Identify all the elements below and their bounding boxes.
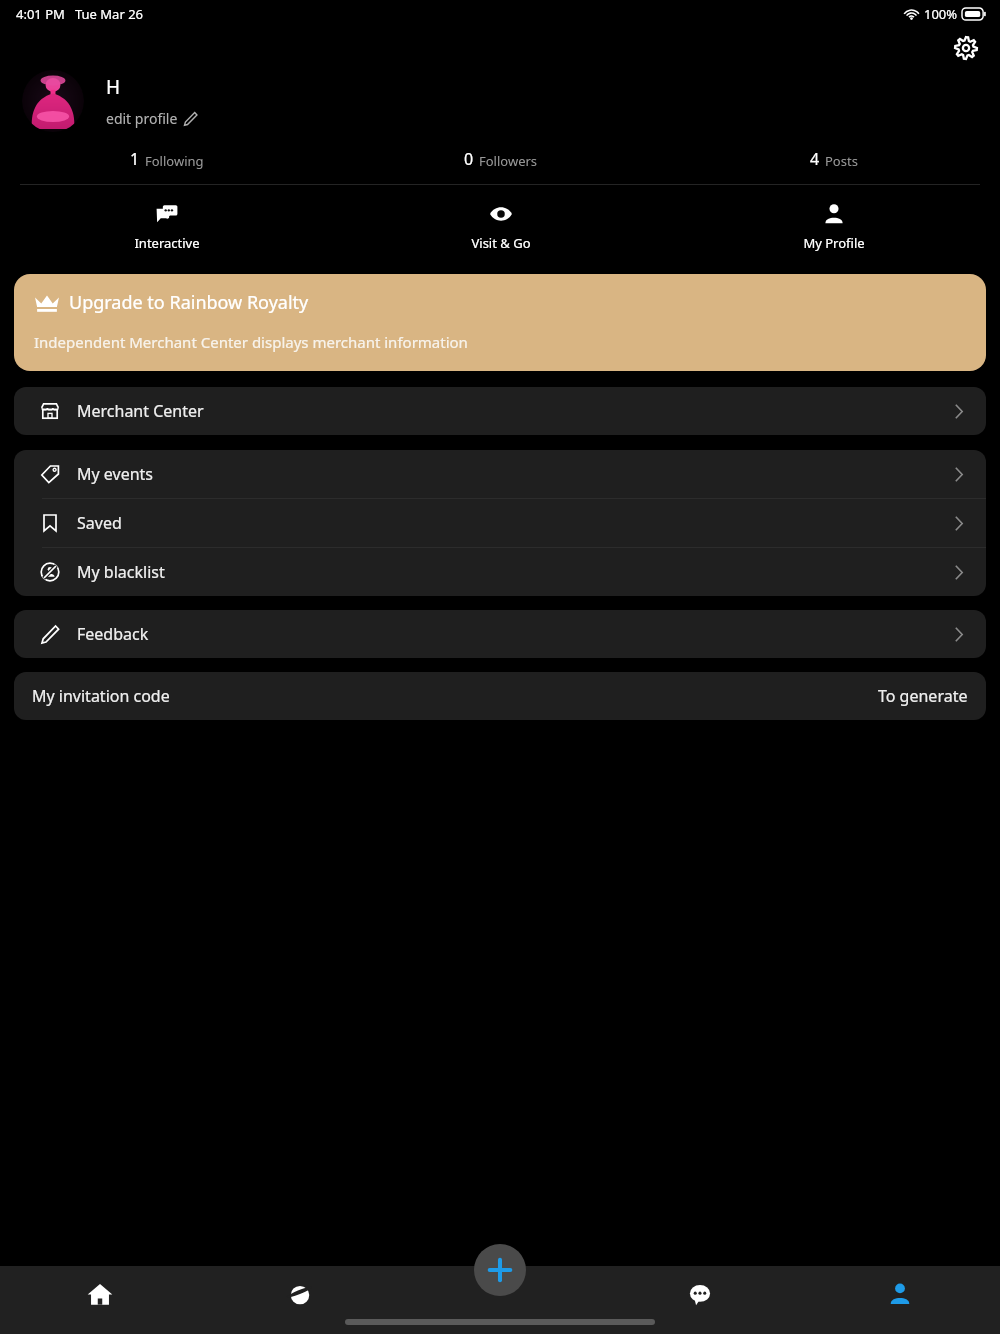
staticText: Following	[145, 152, 204, 170]
staticText: Visit & Go	[471, 234, 531, 252]
button[interactable]: 0	[334, 148, 667, 170]
button[interactable]: Create	[474, 1244, 526, 1296]
staticText: To generate	[878, 685, 968, 707]
button[interactable]: Upgrade to Rainbow Royalty	[14, 274, 986, 371]
staticText: 100%	[924, 5, 958, 23]
staticText: Interactive	[134, 234, 200, 252]
button[interactable]: My Profile	[667, 197, 1000, 256]
button[interactable]: edit profile	[106, 109, 198, 128]
staticText: Feedback	[77, 623, 149, 645]
staticText: 4:01 PM	[16, 5, 65, 23]
staticText: Saved	[77, 512, 122, 534]
staticText: Tue Mar 26	[75, 5, 144, 23]
button[interactable]: Merchant Center	[14, 387, 986, 435]
button[interactable]: Home	[0, 1266, 200, 1322]
staticText: Followers	[479, 152, 538, 170]
button[interactable]: My events	[14, 450, 986, 498]
staticText: My Profile	[803, 234, 865, 252]
staticText: My blacklist	[77, 561, 165, 583]
button[interactable]: My invitation code	[14, 672, 986, 720]
button[interactable]: Settings	[946, 28, 986, 68]
staticText: 1	[130, 148, 140, 170]
button[interactable]: Discover	[200, 1266, 400, 1322]
button[interactable]: Profile	[800, 1266, 1000, 1322]
button[interactable]: My blacklist	[14, 548, 986, 596]
button[interactable]	[22, 70, 84, 132]
button[interactable]: Interactive	[0, 197, 334, 256]
staticText: 4	[810, 148, 820, 170]
staticText: edit profile	[106, 109, 178, 128]
staticText: Independent Merchant Center displays mer…	[34, 332, 468, 352]
staticText: Merchant Center	[77, 400, 204, 422]
staticText: H	[106, 74, 121, 100]
button[interactable]: Saved	[14, 499, 986, 547]
staticText: Posts	[825, 152, 858, 170]
button[interactable]: 1	[0, 148, 334, 170]
button[interactable]: Feedback	[14, 610, 986, 658]
staticText: My events	[77, 463, 154, 485]
button[interactable]: 4	[667, 148, 1000, 170]
staticText: My invitation code	[32, 685, 170, 707]
staticText: 0	[464, 148, 474, 170]
button[interactable]: Messages	[600, 1266, 800, 1322]
staticText: Upgrade to Rainbow Royalty	[69, 290, 309, 315]
button[interactable]: Visit & Go	[334, 197, 667, 256]
